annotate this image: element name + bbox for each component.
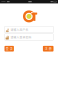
button[interactable]: 请输入登录密码 [4,34,53,40]
button[interactable]: 注 册 [43,46,53,51]
button[interactable]: 登 录 [4,46,14,51]
button[interactable]: 请输入用户名 [4,26,53,33]
staticText: 请输入登录密码 [10,35,31,39]
staticText: 请输入用户名 [10,27,28,32]
staticText: 登 录 [6,47,13,51]
staticText: 注 册 [45,47,52,51]
